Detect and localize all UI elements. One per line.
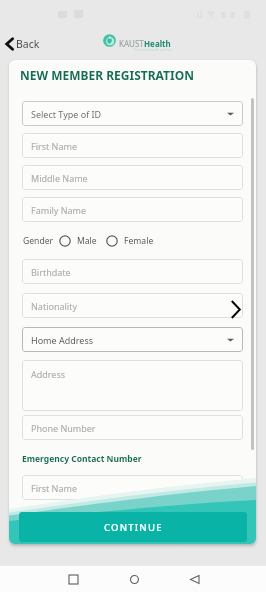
staticText: Back xyxy=(16,37,40,51)
staticText: Health xyxy=(144,38,171,49)
staticText: KAUST xyxy=(119,38,144,49)
staticText: Gender xyxy=(23,235,54,247)
staticText: CONTINUE xyxy=(104,521,163,534)
button[interactable]: CONTINUE xyxy=(19,512,247,542)
staticText: Address xyxy=(31,368,66,380)
staticText: Birthdate xyxy=(31,266,71,278)
staticText: Family Name xyxy=(31,204,87,216)
button[interactable]: Select Type of ID xyxy=(22,101,243,126)
staticText: Nationality xyxy=(31,300,77,312)
button[interactable]: Address xyxy=(22,360,243,411)
button[interactable]: Birthdate xyxy=(22,259,243,284)
button[interactable]: Nationality xyxy=(22,293,243,318)
button[interactable]: Phone Number xyxy=(22,415,243,440)
staticText: Emergency Contact Number xyxy=(22,453,142,465)
button[interactable]: Back xyxy=(179,566,209,592)
staticText: First Name xyxy=(31,140,77,152)
button[interactable]: Female xyxy=(106,235,154,247)
button[interactable]: Recent apps xyxy=(58,566,88,592)
staticText: Your best health partner xyxy=(134,47,172,51)
staticText: Male xyxy=(77,235,97,247)
button[interactable]: Back xyxy=(2,34,43,54)
staticText: Female xyxy=(124,235,154,247)
button[interactable]: Male xyxy=(59,235,97,247)
button[interactable]: First Name xyxy=(22,133,243,158)
button[interactable]: Family Name xyxy=(22,197,243,222)
staticText: Middle Name xyxy=(31,172,88,184)
staticText: Select Type of ID xyxy=(31,108,102,120)
button[interactable]: First Name xyxy=(22,475,243,500)
staticText: Home Address xyxy=(31,334,94,346)
staticText: First Name xyxy=(31,482,77,494)
staticText: Phone Number xyxy=(31,422,96,434)
button[interactable]: Home xyxy=(119,566,149,592)
other: Choose nationality xyxy=(231,300,241,319)
button[interactable]: Home Address xyxy=(22,327,243,352)
button[interactable]: Middle Name xyxy=(22,165,243,190)
staticText: NEW MEMBER REGISTRATION xyxy=(20,67,194,83)
